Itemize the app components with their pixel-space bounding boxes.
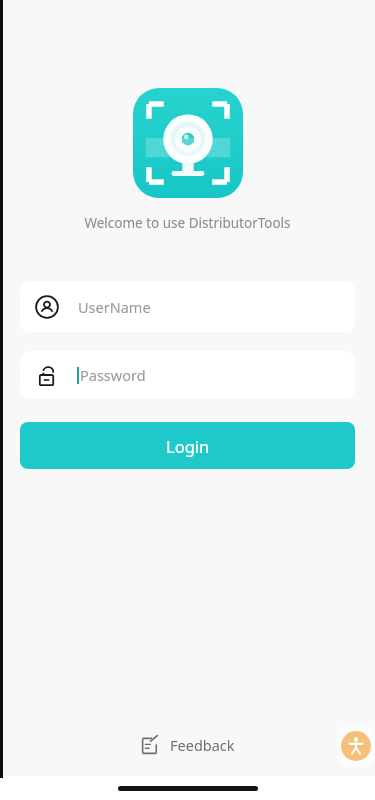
staticText: Login	[166, 435, 210, 457]
button[interactable]: Password	[20, 351, 355, 399]
button[interactable]: UserName	[20, 281, 355, 332]
staticText: Feedback	[170, 735, 235, 755]
staticText: UserName	[78, 297, 151, 317]
button[interactable]: Accessibility	[337, 725, 375, 767]
staticText: Password	[80, 365, 146, 385]
button[interactable]: Feedback	[134, 730, 241, 760]
button[interactable]: Login	[20, 422, 355, 469]
staticText: Welcome to use DistributorTools	[0, 214, 375, 232]
